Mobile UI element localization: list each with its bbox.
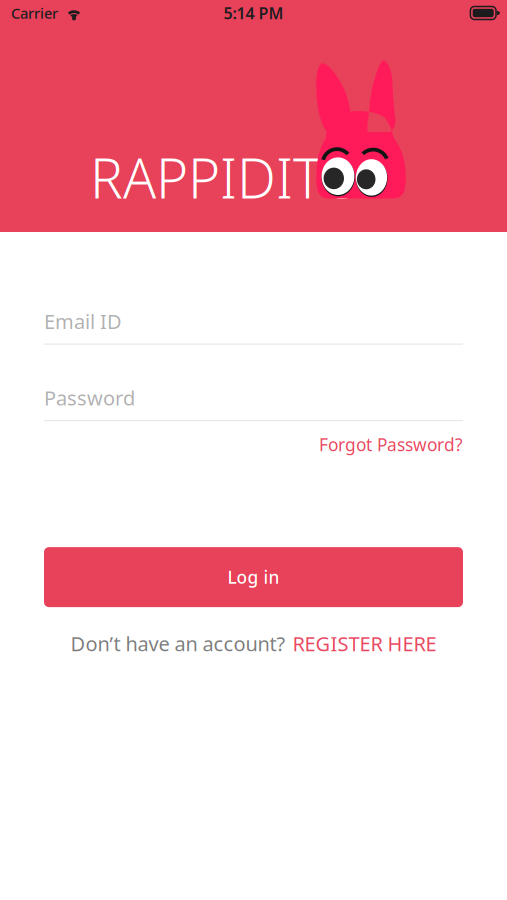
staticText: Email ID	[44, 308, 122, 335]
button[interactable]: Log in	[44, 547, 463, 607]
button[interactable]: Don’t have an account?	[44, 630, 463, 657]
staticText: 5:14 PM	[223, 2, 283, 24]
staticText: Log in	[227, 566, 279, 589]
staticText: REGISTER HERE	[292, 630, 436, 657]
staticText: Forgot Password?	[319, 433, 463, 456]
staticText: Carrier	[11, 3, 58, 23]
staticText: Password	[44, 385, 135, 411]
staticText: RAPPIDITO	[90, 141, 363, 214]
button[interactable]: Forgot Password?	[319, 433, 463, 456]
staticText: Don’t have an account?	[70, 630, 285, 657]
